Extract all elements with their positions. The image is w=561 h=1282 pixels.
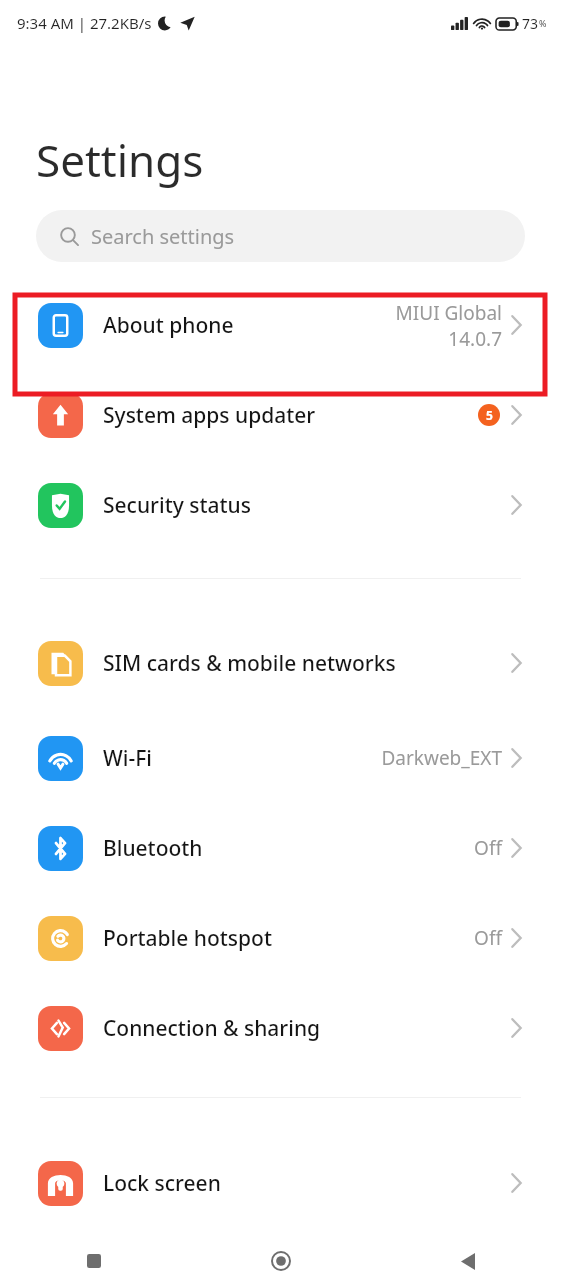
staticText: System apps updater [103, 401, 316, 430]
staticText: % [539, 17, 547, 29]
button[interactable]: Home [187, 1240, 374, 1282]
staticText: 73 [522, 14, 539, 33]
button[interactable]: Bluetooth [0, 803, 561, 893]
staticText: Portable hotspot [103, 924, 272, 953]
staticText: Search settings [91, 223, 235, 250]
staticText: Bluetooth [103, 834, 203, 863]
staticText: Lock screen [103, 1169, 221, 1198]
button[interactable]: Portable hotspot [0, 893, 561, 983]
button[interactable]: Back [374, 1240, 561, 1282]
staticText: 9:34 AM | 27.2KB/s [17, 13, 152, 33]
staticText: SIM cards & mobile networks [103, 649, 396, 678]
button[interactable]: Lock screen [0, 1138, 561, 1228]
staticText: Security status [103, 491, 251, 520]
button[interactable]: SIM cards & mobile networks [0, 613, 561, 713]
staticText: Wi-Fi [103, 744, 152, 773]
staticText: Settings [36, 130, 204, 190]
button[interactable]: Security status [0, 460, 561, 550]
staticText: Connection & sharing [103, 1014, 321, 1043]
button[interactable]: Search settings [36, 210, 525, 262]
staticText: MIUI Global 14.0.7 [395, 300, 502, 351]
button[interactable]: Wi-Fi [0, 713, 561, 803]
staticText: 5 [486, 407, 493, 423]
staticText: Off [474, 925, 502, 951]
staticText: Off [474, 835, 502, 861]
button[interactable]: About phone [0, 280, 561, 370]
button[interactable]: System apps updater [0, 370, 561, 460]
staticText: Darkweb_EXT [381, 745, 502, 771]
staticText: About phone [103, 311, 234, 340]
button[interactable]: Recents [0, 1240, 187, 1282]
button[interactable]: Connection & sharing [0, 983, 561, 1073]
